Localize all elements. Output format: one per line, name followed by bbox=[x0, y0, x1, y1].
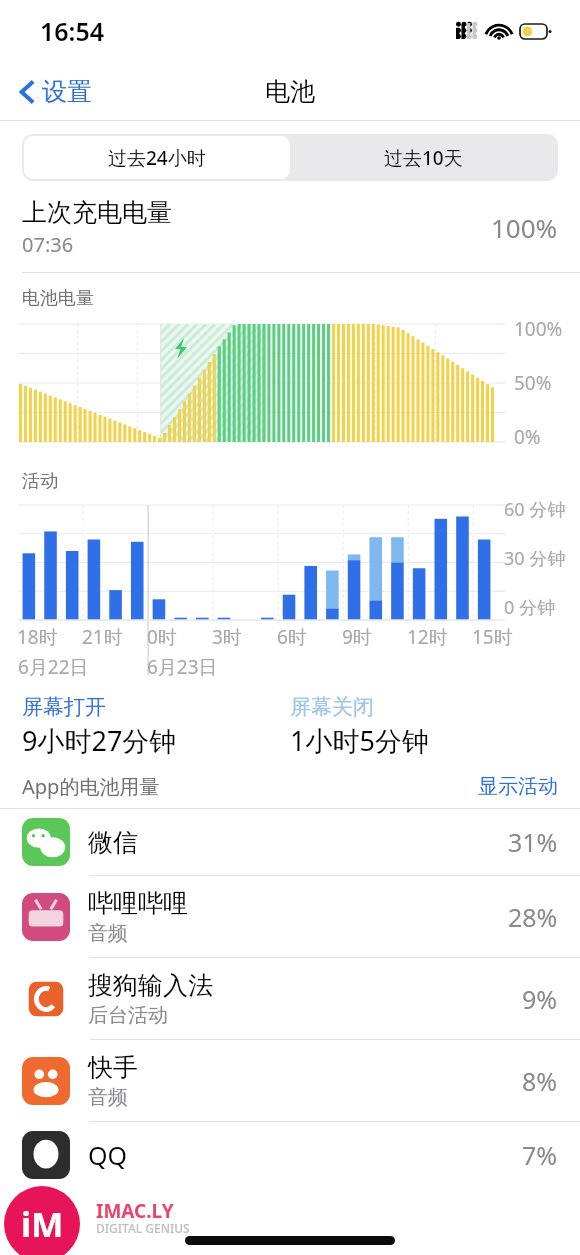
staticText: 屏幕打开 bbox=[22, 694, 106, 720]
button[interactable]: QQ bbox=[0, 1122, 580, 1188]
staticText: 6月22日 bbox=[18, 654, 89, 680]
staticText: 0时 bbox=[147, 624, 177, 650]
staticText: 07:36 bbox=[22, 231, 74, 258]
staticText: 12时 bbox=[407, 624, 448, 650]
button[interactable]: 过去10天 bbox=[290, 136, 556, 179]
staticText: 31% bbox=[508, 825, 558, 859]
staticText: 音频 bbox=[88, 921, 128, 946]
staticText: 15时 bbox=[472, 624, 513, 650]
button[interactable]: 显示活动 bbox=[478, 774, 558, 799]
staticText: 9时 bbox=[342, 624, 372, 650]
staticText: 7% bbox=[522, 1138, 558, 1172]
staticText: 显示活动 bbox=[478, 774, 558, 799]
staticText: 1小时5分钟 bbox=[290, 722, 429, 759]
staticText: QQ bbox=[88, 1138, 128, 1172]
button[interactable]: 快手 bbox=[0, 1040, 580, 1121]
button[interactable]: 设置 bbox=[16, 70, 96, 113]
button[interactable]: 微信 bbox=[0, 809, 580, 875]
staticText: 6时 bbox=[277, 624, 307, 650]
staticText: 哔哩哔哩 bbox=[88, 888, 188, 919]
staticText: 过去10天 bbox=[384, 145, 463, 171]
staticText: 30 分钟 bbox=[504, 546, 566, 571]
staticText: App的电池用量 bbox=[22, 773, 478, 800]
staticText: 活动 bbox=[22, 470, 58, 493]
staticText: 过去24小时 bbox=[108, 145, 206, 171]
button[interactable]: 搜狗输入法 bbox=[0, 958, 580, 1039]
staticText: 0% bbox=[514, 424, 541, 450]
button[interactable]: 过去24小时 bbox=[24, 136, 290, 179]
staticText: 电池电量 bbox=[22, 287, 94, 310]
staticText: 电池 bbox=[265, 76, 315, 107]
staticText: 音频 bbox=[88, 1085, 128, 1110]
staticText: 9小时27分钟 bbox=[22, 722, 177, 759]
staticText: DIGITAL GENIUS bbox=[96, 1220, 190, 1236]
staticText: 28% bbox=[508, 900, 558, 934]
staticText: 9% bbox=[522, 982, 558, 1016]
staticText: 16:54 bbox=[40, 14, 105, 48]
staticText: 100% bbox=[514, 316, 563, 342]
button[interactable]: 上次充电电量 bbox=[0, 197, 580, 272]
staticText: 微信 bbox=[88, 827, 138, 858]
button[interactable]: 哔哩哔哩 bbox=[0, 876, 580, 957]
staticText: 快手 bbox=[88, 1052, 138, 1083]
staticText: 6月23日 bbox=[147, 654, 218, 680]
staticText: 设置 bbox=[42, 76, 92, 107]
staticText: 搜狗输入法 bbox=[88, 970, 213, 1001]
staticText: 3时 bbox=[212, 624, 242, 650]
staticText: 50% bbox=[514, 370, 552, 396]
staticText: 60 分钟 bbox=[504, 497, 566, 522]
staticText: iM bbox=[21, 1201, 64, 1247]
staticText: 后台活动 bbox=[88, 1003, 168, 1028]
staticText: 屏幕关闭 bbox=[290, 694, 374, 720]
staticText: IMAC.LY bbox=[96, 1198, 174, 1224]
staticText: 21时 bbox=[82, 624, 123, 650]
staticText: 上次充电电量 bbox=[22, 197, 172, 228]
staticText: 0 分钟 bbox=[504, 595, 555, 620]
staticText: 18时 bbox=[17, 624, 58, 650]
staticText: 100% bbox=[491, 210, 558, 245]
staticText: 8% bbox=[522, 1064, 558, 1098]
